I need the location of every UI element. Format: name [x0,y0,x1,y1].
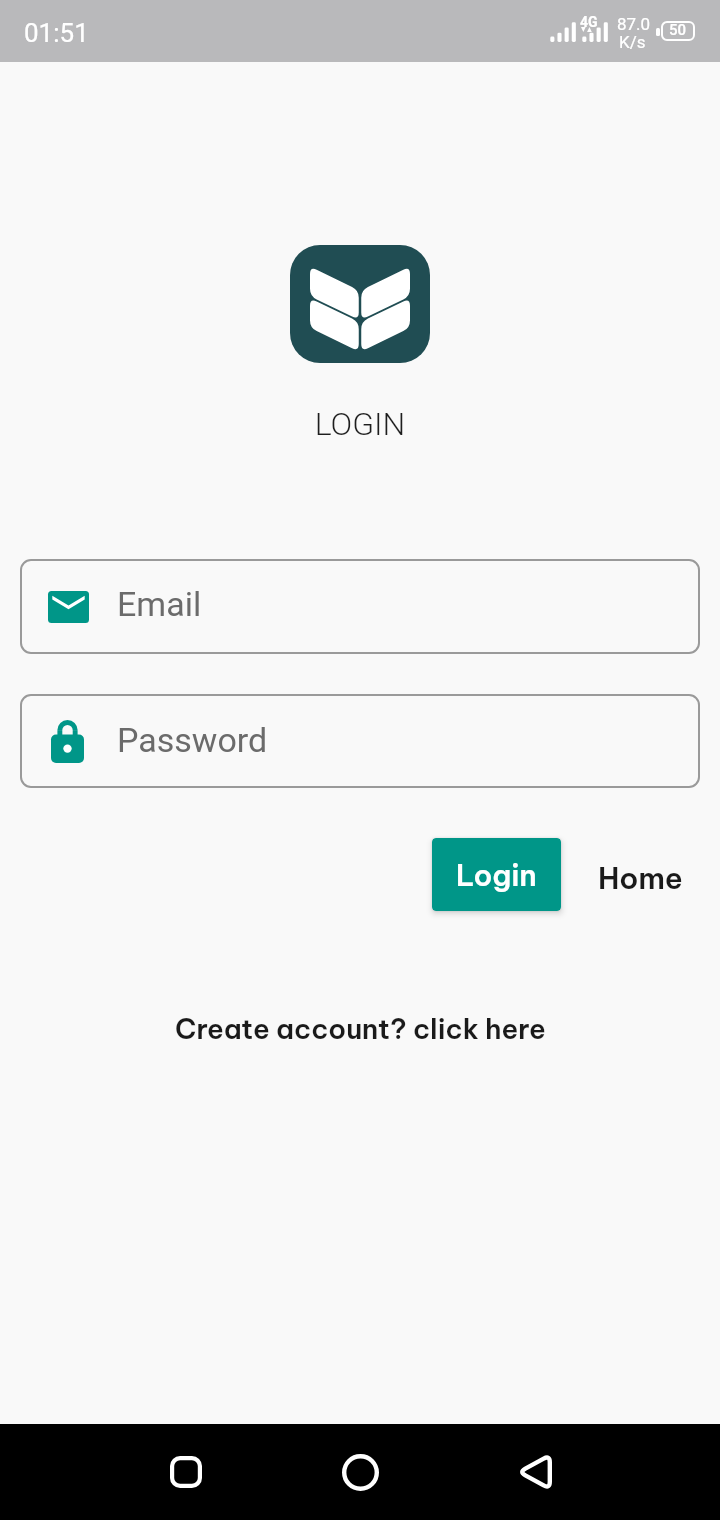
button[interactable]: Recent apps [141,1424,231,1520]
staticText: 4G [580,14,598,30]
staticText: 01:51 [24,18,89,48]
staticText: K/s [619,32,646,52]
button[interactable]: Login [432,838,561,911]
button[interactable]: Back [489,1424,579,1520]
button[interactable]: Home [585,845,695,905]
staticText: Password [117,720,268,760]
staticText: Create account? click here [175,1011,546,1046]
staticText: Login [456,857,537,894]
button[interactable]: Home [315,1424,405,1520]
staticText: Email [117,584,202,624]
staticText: 50 [669,21,687,39]
staticText: LOGIN [0,405,720,443]
button[interactable]: Create account? click here [0,995,720,1061]
button[interactable] [20,559,700,654]
staticText: 87.0 [617,14,651,34]
button[interactable] [20,694,700,788]
staticText: Home [598,859,683,896]
